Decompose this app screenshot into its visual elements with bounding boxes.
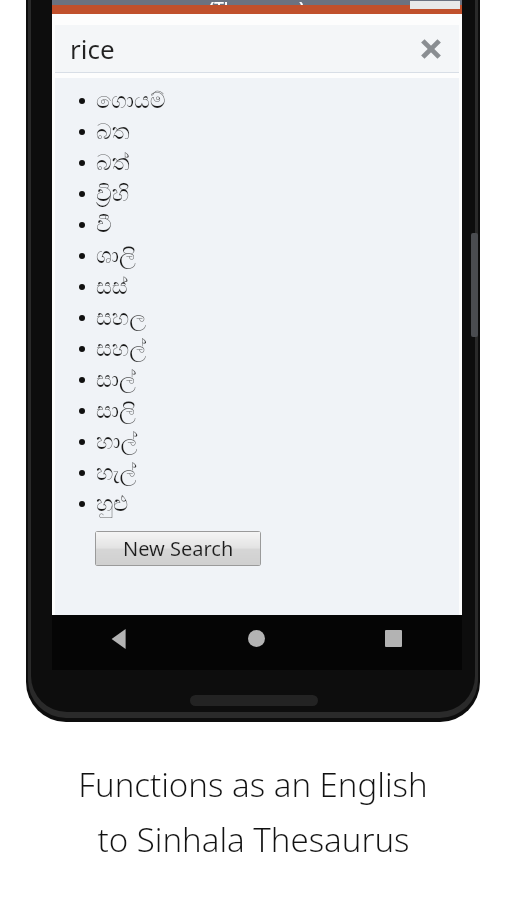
button[interactable]: සහල (55, 302, 459, 333)
button[interactable]: Recent apps (325, 611, 462, 666)
staticText: වී (96, 214, 112, 236)
staticText: බත් (96, 152, 130, 174)
staticText: Functions as an English (78, 762, 428, 807)
button[interactable]: ව්‍රිහි (55, 178, 459, 209)
button[interactable]: සාලි (55, 395, 459, 426)
staticText: සස් (96, 276, 128, 298)
button[interactable]: සස් (55, 271, 459, 302)
button[interactable]: හැල් (55, 457, 459, 488)
button[interactable]: හුළු (55, 488, 459, 519)
staticText: ව්‍රිහි (96, 183, 130, 205)
button[interactable]: සහල් (55, 333, 459, 364)
staticText: සහල (96, 307, 146, 329)
staticText: බත (96, 121, 130, 143)
staticText: rice (70, 31, 115, 66)
button[interactable]: වී (55, 209, 459, 240)
staticText: (Thesaurus) (209, 0, 305, 5)
staticText: හැල් (96, 462, 137, 484)
staticText: සාල් (96, 369, 136, 391)
staticText: New Search (123, 535, 234, 562)
staticText: ශාලි (96, 245, 136, 267)
staticText: සාලි (96, 400, 136, 422)
staticText: සහල් (96, 338, 146, 360)
button[interactable]: rice (55, 25, 459, 72)
button[interactable]: New Search (95, 531, 261, 566)
button[interactable]: Back (52, 611, 188, 666)
button[interactable]: Clear search (411, 29, 451, 69)
staticText: to Sinhala Thesaurus (97, 817, 410, 862)
button[interactable]: බත් (55, 147, 459, 178)
button[interactable]: ශාලි (55, 240, 459, 271)
staticText: හුළු (96, 493, 129, 515)
button[interactable]: ගොයම් (55, 85, 459, 116)
button[interactable]: හාල් (55, 426, 459, 457)
button[interactable]: සාල් (55, 364, 459, 395)
button[interactable]: බත (55, 116, 459, 147)
button[interactable]: Home (188, 611, 325, 666)
staticText: ගොයම් (96, 90, 166, 112)
staticText: හාල් (96, 431, 138, 453)
